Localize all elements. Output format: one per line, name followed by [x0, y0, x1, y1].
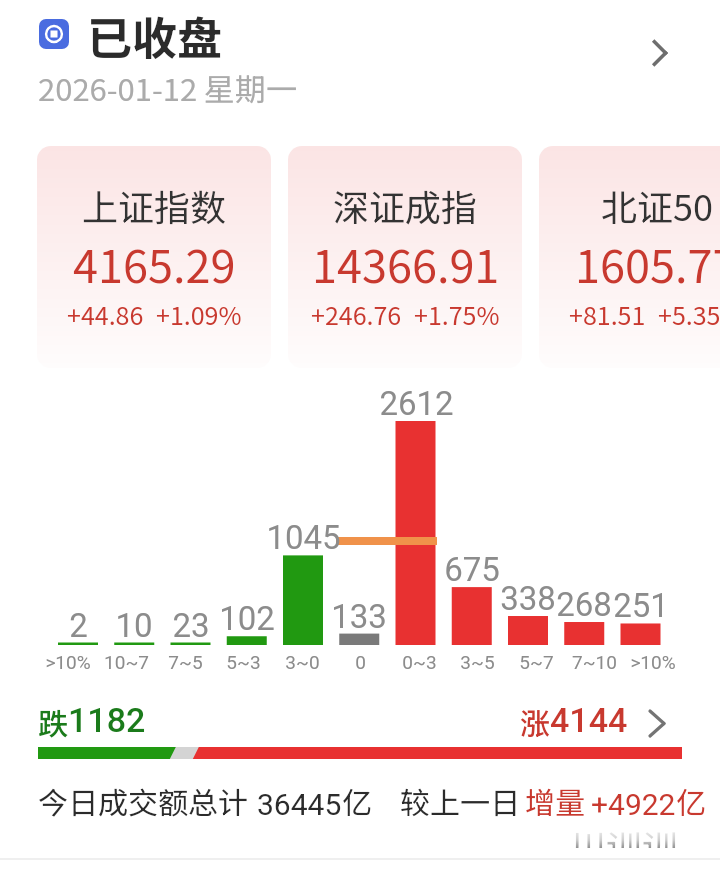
staticText: +5.35%: [658, 296, 720, 332]
staticText: 亿: [342, 779, 372, 822]
staticText: >10%: [45, 651, 91, 673]
staticText: +4922: [591, 787, 676, 822]
staticText: 10~7: [104, 651, 149, 673]
staticText: 1045: [266, 518, 341, 557]
staticText: 2026-01-12 星期一: [38, 65, 298, 110]
staticText: 3~5: [460, 651, 495, 673]
staticText: 上证指数: [82, 179, 227, 231]
staticText: 251: [613, 586, 669, 625]
staticText: 675: [444, 550, 500, 589]
button[interactable]: 北证50: [539, 146, 720, 368]
staticText: 北证50: [601, 179, 713, 231]
button[interactable]: 上证指数: [37, 146, 271, 368]
staticText: 7~5: [168, 651, 203, 673]
staticText: 5~3: [226, 651, 261, 673]
staticText: 36445: [257, 787, 342, 822]
staticText: +44.86: [67, 296, 144, 332]
staticText: 2612: [379, 384, 454, 423]
button[interactable]: More: [636, 29, 684, 77]
staticText: 3~0: [285, 651, 320, 673]
staticText: 已收盘: [87, 3, 223, 68]
staticText: +1.75%: [414, 296, 500, 332]
staticText: 0: [355, 651, 366, 673]
staticText: +1.09%: [156, 296, 242, 332]
staticText: +81.51: [569, 296, 646, 332]
staticText: 增量: [525, 779, 585, 822]
staticText: 7~10: [572, 651, 617, 673]
staticText: +246.76: [311, 296, 402, 332]
staticText: 338: [500, 579, 556, 618]
staticText: 2: [69, 606, 88, 645]
staticText: 今日成交额总计: [38, 779, 248, 822]
staticText: 5~7: [519, 651, 554, 673]
staticText: 1605.77: [575, 231, 720, 296]
staticText: 较上一日: [400, 779, 520, 822]
staticText: 268: [556, 585, 612, 624]
button[interactable]: 深证成指: [288, 146, 522, 368]
staticText: 涨: [520, 700, 550, 743]
staticText: 川训训丨训训: [570, 824, 706, 848]
staticText: 深证成指: [333, 179, 478, 231]
staticText: 跌: [38, 700, 68, 743]
staticText: 10: [115, 606, 153, 645]
staticText: 0~3: [402, 651, 437, 673]
staticText: 4165.29: [73, 231, 236, 296]
button[interactable]: 跌: [30, 698, 690, 746]
staticText: 4144: [550, 700, 628, 740]
staticText: 23: [172, 606, 210, 645]
staticText: 133: [331, 597, 387, 636]
staticText: >10%: [630, 651, 676, 673]
button[interactable]: 已收盘: [0, 0, 720, 120]
staticText: 14366.91: [312, 231, 500, 296]
staticText: 亿: [676, 779, 706, 822]
staticText: 102: [219, 599, 275, 638]
staticText: 1182: [68, 700, 146, 740]
